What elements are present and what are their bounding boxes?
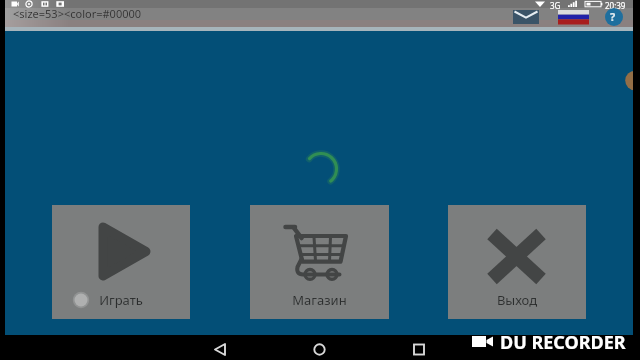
button[interactable]: Back bbox=[205, 338, 235, 360]
staticText: 20:39 bbox=[605, 0, 626, 11]
staticText: Играть bbox=[52, 291, 190, 309]
staticText: ? bbox=[610, 9, 616, 24]
button[interactable]: Выход bbox=[448, 205, 586, 319]
button[interactable]: Recent apps bbox=[404, 338, 434, 360]
staticText: DU RECORDER bbox=[500, 330, 626, 355]
staticText: Магазин bbox=[250, 291, 389, 309]
button[interactable]: Играть bbox=[52, 205, 190, 319]
staticText: Выход bbox=[448, 291, 586, 309]
button[interactable]: Messages bbox=[513, 10, 539, 24]
button[interactable]: Магазин bbox=[250, 205, 389, 319]
button[interactable]: Home bbox=[305, 338, 335, 360]
button[interactable]: Help bbox=[605, 8, 623, 26]
button[interactable]: Language bbox=[558, 10, 589, 24]
staticText: 3G bbox=[550, 0, 561, 11]
staticText: <size=53><color=#00000 bbox=[13, 6, 142, 21]
